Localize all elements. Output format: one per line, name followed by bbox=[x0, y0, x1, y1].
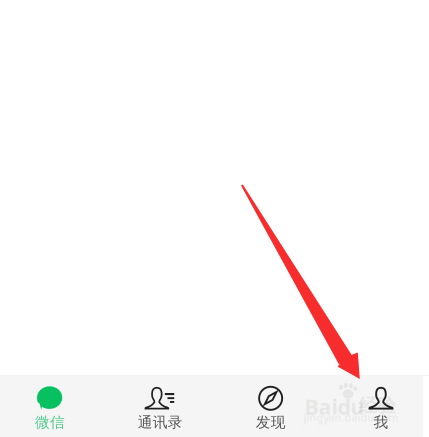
staticText: 我 bbox=[373, 413, 388, 431]
staticText: Baidu bbox=[304, 392, 364, 421]
staticText: 经验 bbox=[358, 394, 396, 417]
button[interactable]: 我 bbox=[326, 375, 429, 437]
staticText: 发现 bbox=[256, 413, 286, 431]
button[interactable]: 通讯录 bbox=[105, 375, 215, 437]
button[interactable]: 发现 bbox=[215, 375, 326, 437]
staticText: 通讯录 bbox=[138, 413, 183, 431]
staticText: jingyan.baidu.com bbox=[303, 410, 398, 425]
staticText: 微信 bbox=[35, 413, 65, 431]
button[interactable]: 微信 bbox=[0, 375, 105, 437]
